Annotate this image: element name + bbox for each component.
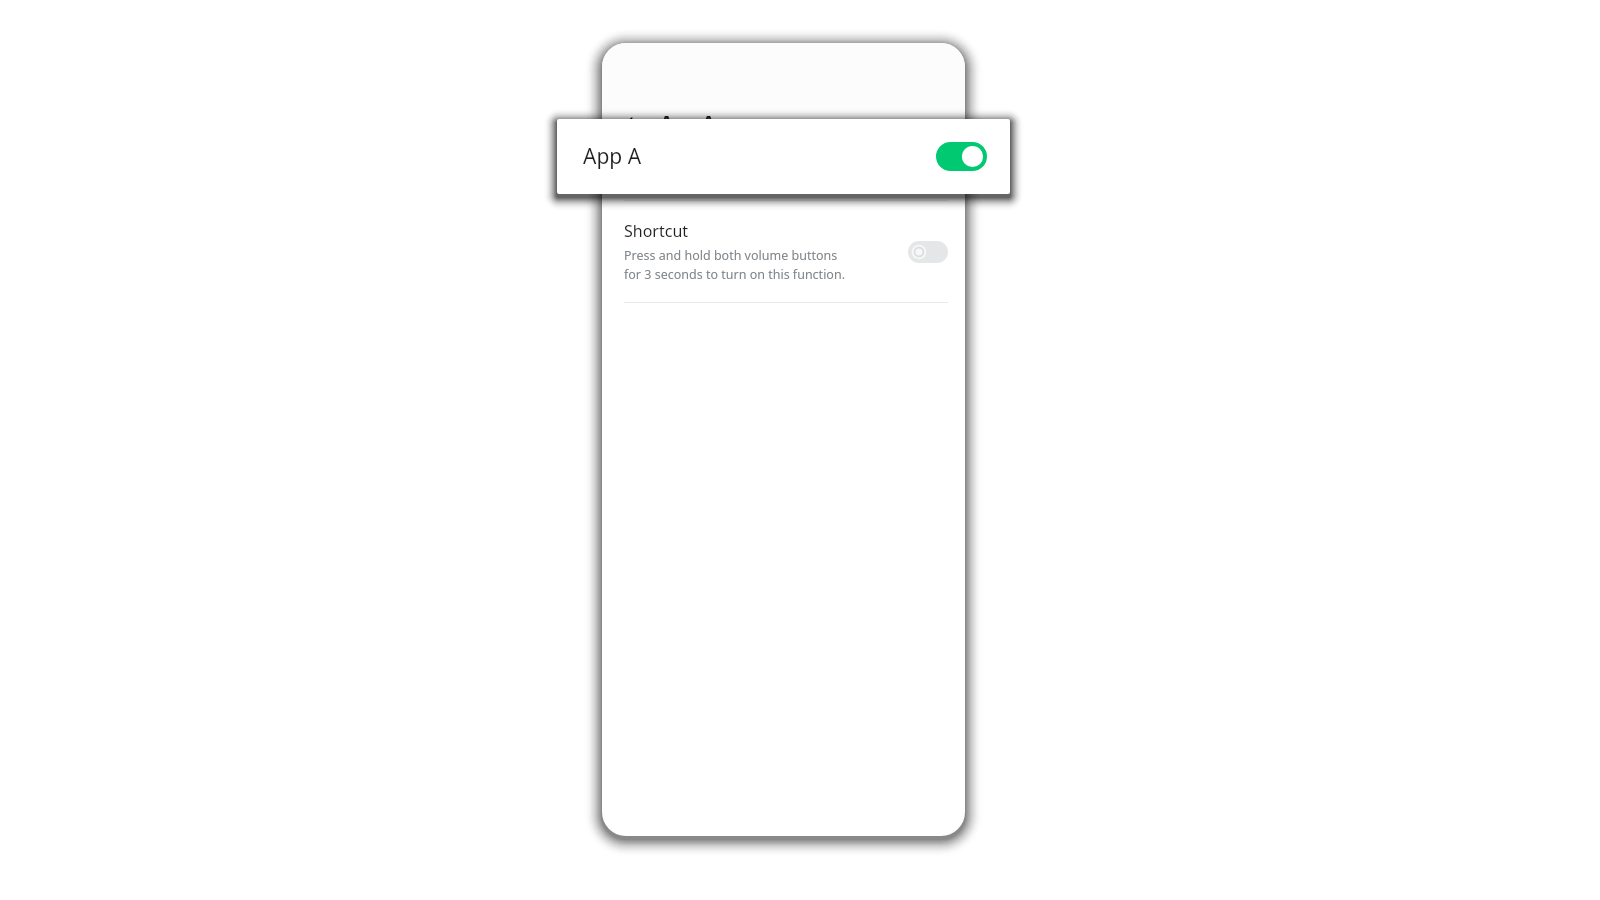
button[interactable]: Shortcut: [602, 201, 965, 302]
staticText: Shortcut: [624, 220, 689, 242]
button[interactable]: Back: [614, 103, 654, 143]
button[interactable]: Shortcut toggle, off: [908, 241, 948, 263]
staticText: App A: [583, 142, 936, 171]
staticText: Press and hold both volume buttons for 3…: [624, 247, 856, 283]
staticText: App A: [660, 110, 716, 136]
button[interactable]: App A: [557, 119, 1010, 194]
button[interactable]: App A toggle, on: [936, 142, 987, 171]
